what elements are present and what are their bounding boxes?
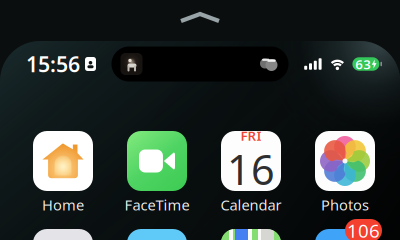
button[interactable]: Home (16, 131, 110, 214)
staticText: FaceTime (124, 195, 189, 214)
button[interactable]: Photos (298, 131, 392, 214)
button[interactable]: FRI (204, 131, 298, 214)
staticText: Calendar (220, 195, 281, 214)
staticText: 16 (227, 141, 275, 196)
staticText: 15:56 (26, 50, 80, 78)
staticText: Home (42, 195, 84, 214)
staticText: FRI (240, 127, 261, 144)
staticText: 63 (355, 55, 371, 73)
staticText: 106 (347, 218, 380, 240)
staticText: Photos (321, 195, 369, 214)
button[interactable]: FaceTime (110, 131, 204, 214)
